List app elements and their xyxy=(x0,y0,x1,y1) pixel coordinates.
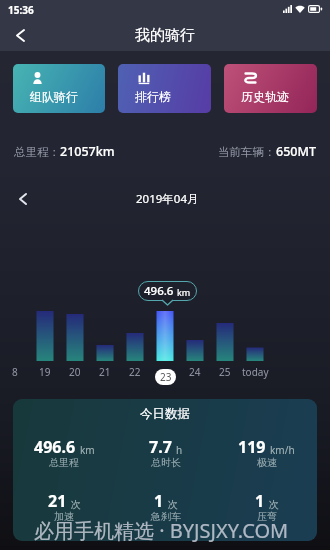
staticText: 496.6 xyxy=(144,283,174,299)
staticText: 总里程： xyxy=(14,145,60,159)
button[interactable]: 组队骑行 xyxy=(13,64,105,113)
staticText: 急刹车 xyxy=(151,510,181,523)
staticText: 今日数据 xyxy=(13,406,317,422)
staticText: 21 xyxy=(99,365,111,379)
staticText: 2019年04月 xyxy=(136,191,199,207)
staticText: 119 xyxy=(238,436,266,458)
staticText: 我的骑行 xyxy=(135,26,195,45)
button[interactable]: Previous month xyxy=(0,184,46,214)
staticText: 15:36 xyxy=(8,3,34,17)
staticText: 8 xyxy=(12,365,18,379)
staticText: 21057km xyxy=(60,143,115,160)
staticText: 压弯 xyxy=(257,510,277,523)
staticText: 次 xyxy=(269,498,279,511)
staticText: 25 xyxy=(219,365,231,379)
staticText: 组队骑行 xyxy=(30,89,78,104)
staticText: km xyxy=(177,286,191,298)
staticText: 必用手机精选 · BYJSJXY.COM xyxy=(34,517,289,544)
staticText: 总时长 xyxy=(151,456,181,469)
staticText: 历史轨迹 xyxy=(241,89,289,104)
staticText: 24 xyxy=(189,365,201,379)
staticText: 7.7 xyxy=(149,436,172,458)
staticText: 当前车辆： xyxy=(218,145,276,159)
staticText: km xyxy=(80,443,95,457)
staticText: 次 xyxy=(168,498,178,511)
button[interactable]: Back xyxy=(0,20,40,51)
staticText: km/h xyxy=(270,443,295,457)
button[interactable]: 23 xyxy=(155,369,176,385)
staticText: 21 xyxy=(48,490,67,512)
button[interactable]: 历史轨迹 xyxy=(224,64,317,113)
staticText: 650MT xyxy=(276,143,316,160)
staticText: 极速 xyxy=(257,456,277,469)
staticText: 总里程 xyxy=(49,456,79,469)
staticText: today xyxy=(242,365,269,379)
staticText: 1 xyxy=(255,490,265,512)
staticText: h xyxy=(176,443,183,457)
staticText: 23 xyxy=(160,370,172,384)
staticText: 排行榜 xyxy=(135,89,171,104)
staticText: 19 xyxy=(39,365,51,379)
staticText: 加速 xyxy=(54,510,74,523)
staticText: 1 xyxy=(154,490,164,512)
staticText: 20 xyxy=(69,365,81,379)
button[interactable]: 排行榜 xyxy=(118,64,211,113)
staticText: 22 xyxy=(129,365,141,379)
staticText: 次 xyxy=(71,498,81,511)
staticText: 496.6 xyxy=(34,436,76,458)
